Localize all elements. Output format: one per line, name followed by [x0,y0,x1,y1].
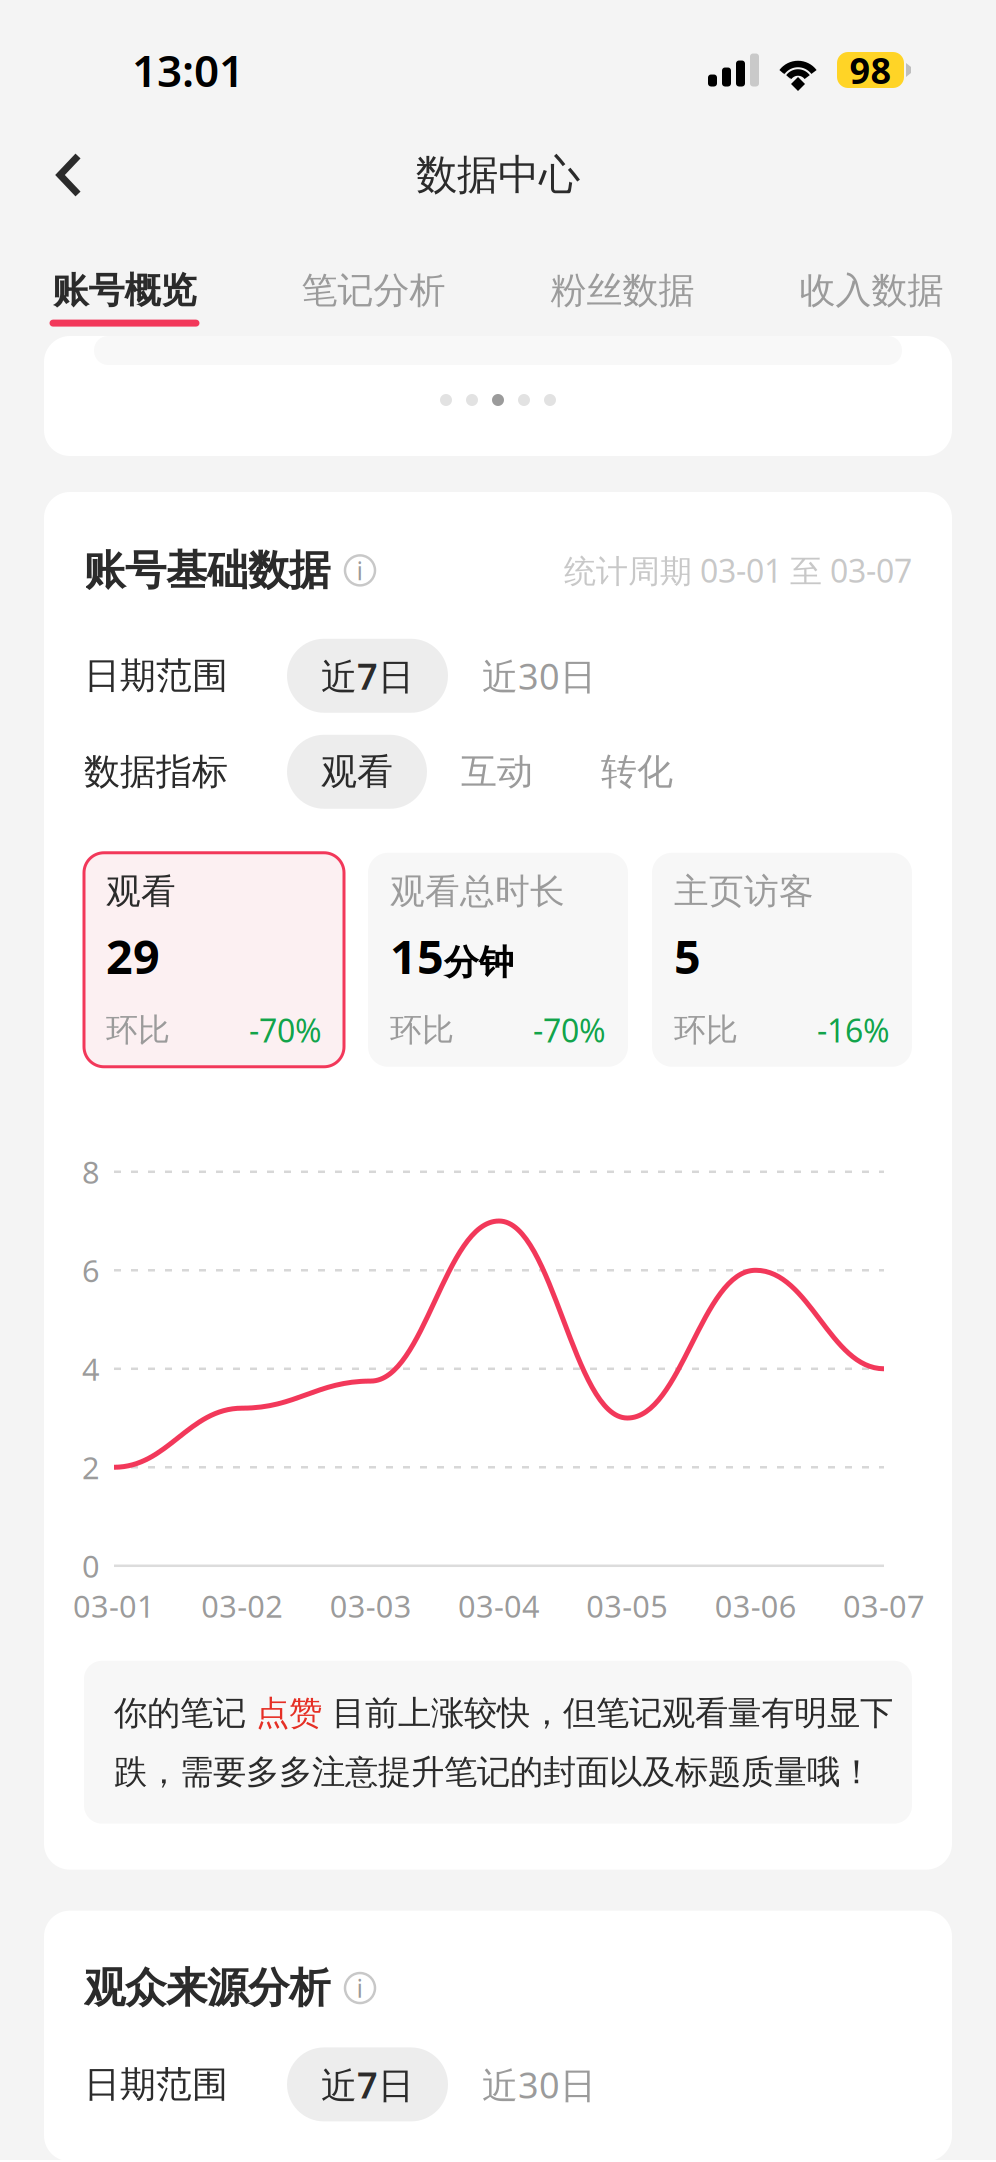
staticText: 13:01 [132,41,244,99]
staticText: 03-03 [330,1585,412,1626]
staticText: 近7日 [321,652,414,700]
staticText: 分钟 [444,941,514,984]
staticText: 03-01 [73,1585,155,1626]
staticText: 转化 [601,750,673,794]
staticText: 15 [390,925,444,987]
staticText: -70% [249,1009,322,1051]
staticText: 目前上涨较快，但笔记观看量有明显下 [322,1693,893,1734]
button[interactable]: 观看 [84,853,344,1067]
button[interactable]: 账号概览 [0,218,249,328]
staticText: 观看 [321,750,393,794]
staticText: 账号基础数据 [84,545,330,596]
staticText: 03-07 [843,1585,925,1626]
staticText: 你的笔记 [114,1693,256,1734]
button[interactable]: 近30日 [448,2047,630,2121]
staticText: 观看总时长 [390,870,565,913]
staticText: 粉丝数据 [550,268,694,313]
button[interactable]: 近7日 [287,639,448,713]
staticText: 6 [82,1250,100,1291]
staticText: 03-06 [715,1585,797,1626]
staticText: 03-02 [201,1585,283,1626]
button[interactable]: 转化 [567,735,707,809]
button[interactable]: 主页访客 [652,853,912,1067]
staticText: 环比 [390,1010,454,1050]
button[interactable]: 互动 [427,735,567,809]
staticText: 98 [849,46,891,94]
staticText: 近7日 [321,2060,414,2108]
staticText: 4 [82,1348,100,1389]
staticText: 日期范围 [84,654,228,698]
staticText: 0 [82,1545,100,1586]
staticText: -70% [533,1009,606,1051]
staticText: 环比 [674,1010,738,1050]
staticText: 环比 [106,1010,170,1050]
staticText: 近30日 [482,652,596,700]
staticText: 5 [674,925,701,987]
button[interactable]: 笔记分析 [249,218,498,328]
staticText: 日期范围 [84,2062,228,2106]
staticText: 观看 [106,870,176,913]
button[interactable]: 观看总时长 [368,853,628,1067]
staticText: 互动 [461,750,533,794]
staticText: 03-04 [458,1585,540,1626]
staticText: 03-05 [586,1585,668,1626]
staticText: 主页访客 [674,870,814,913]
staticText: 笔记分析 [301,268,445,313]
button[interactable]: 粉丝数据 [498,218,747,328]
staticText: 跌，需要多多注意提升笔记的封面以及标题质量哦！ [114,1752,873,1793]
staticText: 近30日 [482,2060,596,2108]
staticText: 8 [82,1151,100,1192]
staticText: 统计周期 03-01 至 03-07 [564,549,912,592]
staticText: 观众来源分析 [84,1963,330,2013]
button[interactable]: 近30日 [448,639,630,713]
staticText: 数据中心 [416,150,580,200]
staticText: i [356,554,363,587]
staticText: 点赞 [256,1693,322,1734]
button[interactable]: 近7日 [287,2047,448,2121]
staticText: 数据指标 [84,750,228,794]
staticText: 收入数据 [799,268,943,313]
button[interactable]: Back [0,131,112,219]
button[interactable]: 收入数据 [747,218,996,328]
staticText: 账号概览 [52,268,196,313]
button[interactable]: 观看 [287,735,427,809]
staticText: 29 [106,925,160,987]
staticText: -16% [817,1009,890,1051]
staticText: 2 [82,1447,100,1488]
staticText: i [356,1971,363,2005]
